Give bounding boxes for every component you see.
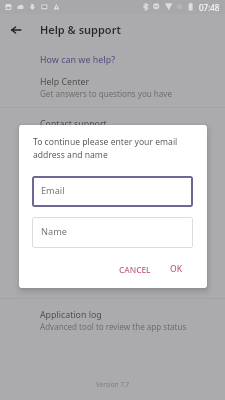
staticText: Help Center [40,76,90,88]
staticText: Name [41,225,67,238]
staticText: OK [170,263,183,275]
staticText: 07:48 [199,2,220,13]
button[interactable]: Name [32,217,193,248]
button[interactable]: Contact support [0,115,225,146]
staticText: CANCEL [119,264,151,275]
staticText: Get answers to questions you have [40,88,172,99]
button[interactable]: Email [32,176,193,207]
staticText: Contact support [40,118,107,130]
staticText: How can we help? [40,54,116,66]
staticText: To continue please enter your email addr… [33,136,178,160]
staticText: Send us a message [40,130,113,141]
button[interactable]: CANCEL [111,258,159,280]
button[interactable]: Help Center [0,73,225,104]
staticText: Email [41,184,65,197]
button[interactable]: Application log [0,306,225,337]
staticText: Help & support [40,22,121,37]
button[interactable]: OK [159,258,194,280]
staticText: Application log [40,309,102,321]
staticText: Version 7.7 [96,380,130,389]
button[interactable]: Back [0,15,32,47]
staticText: Advanced tool to review the app status [40,321,187,332]
button: Back [0,14,225,48]
